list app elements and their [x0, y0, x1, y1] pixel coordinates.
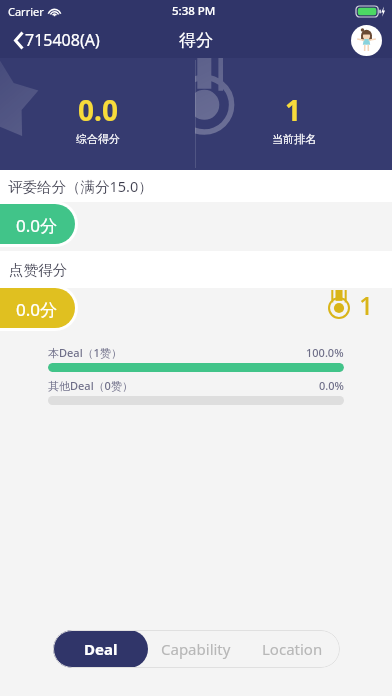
staticText: 5:38 PM — [172, 3, 216, 19]
button[interactable]: Capability — [148, 630, 244, 668]
staticText: 715408(A) — [25, 29, 100, 51]
staticText: 其他Deal（0赞） — [48, 378, 133, 393]
staticText: Location — [262, 639, 323, 659]
other: Likes medal — [328, 290, 350, 319]
staticText: 综合得分 — [76, 132, 120, 146]
staticText: 1 — [285, 91, 302, 129]
staticText: 点赞得分 — [9, 261, 67, 279]
staticText: Carrier — [8, 4, 44, 19]
staticText: 0.0 — [78, 91, 118, 129]
button[interactable]: Deal — [53, 630, 148, 668]
staticText: 1 — [359, 288, 374, 322]
staticText: 本Deal（1赞） — [48, 345, 122, 360]
staticText: 100.0% — [306, 345, 344, 360]
button[interactable]: 0.0分 — [0, 204, 75, 244]
staticText: 评委给分（满分15.0） — [8, 176, 153, 196]
button[interactable]: 715408(A) — [0, 25, 108, 55]
staticText: Capability — [161, 639, 231, 659]
staticText: 0.0% — [319, 378, 344, 393]
button[interactable]: Profile — [351, 25, 382, 56]
staticText: Deal — [84, 639, 118, 659]
button[interactable]: 0.0分 — [0, 288, 75, 328]
button[interactable]: Location — [244, 630, 340, 668]
staticText: 当前排名 — [272, 132, 316, 146]
staticText: 0.0分 — [16, 214, 58, 237]
staticText: 0.0分 — [16, 298, 58, 321]
staticText: 得分 — [179, 30, 213, 51]
button[interactable]: Likes medal — [328, 286, 374, 321]
